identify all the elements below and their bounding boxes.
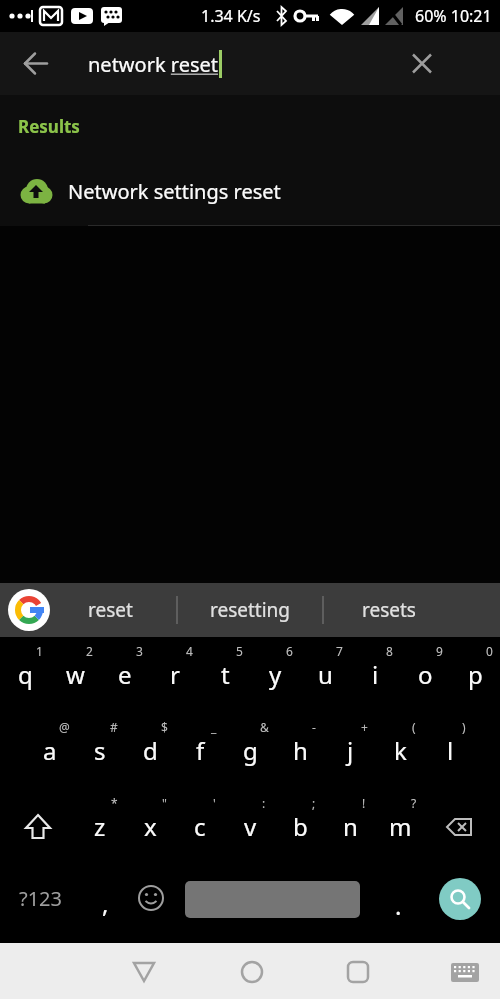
button[interactable]: l (425, 713, 475, 789)
button[interactable] (0, 789, 75, 865)
staticText: a (43, 734, 57, 767)
staticText: f (196, 734, 205, 767)
button[interactable] (224, 943, 280, 999)
button[interactable]: c (175, 789, 225, 865)
button[interactable]: y (250, 637, 300, 713)
button[interactable]: f (175, 713, 225, 789)
staticText: + (361, 719, 368, 735)
staticText: 0 (486, 643, 493, 659)
button[interactable]: w (50, 637, 100, 713)
button[interactable]: Network settings reset (0, 163, 500, 219)
button[interactable]: m (375, 789, 425, 865)
button[interactable]: g (225, 713, 275, 789)
button[interactable]: a (25, 713, 75, 789)
button[interactable]: p (450, 637, 500, 713)
button[interactable]: v (225, 789, 275, 865)
staticText: , (102, 887, 109, 920)
button[interactable]: k (375, 713, 425, 789)
staticText: Network settings reset (68, 178, 281, 205)
staticText: & (260, 719, 269, 735)
staticText: @ (59, 719, 70, 735)
button[interactable] (425, 789, 500, 865)
button[interactable] (330, 943, 386, 999)
staticText: Results (18, 115, 80, 138)
button[interactable]: . (378, 865, 418, 941)
staticText: l (447, 734, 454, 767)
staticText: v (244, 810, 257, 843)
staticText: ?123 (19, 885, 62, 912)
button[interactable]: h (275, 713, 325, 789)
button[interactable]: d (125, 713, 175, 789)
button[interactable]: resetting (178, 583, 322, 637)
staticText: t (221, 658, 230, 691)
staticText: $ (161, 719, 168, 735)
staticText: c (194, 810, 206, 843)
button[interactable]: e (100, 637, 150, 713)
staticText: ? (411, 795, 417, 811)
staticText: # (110, 719, 118, 735)
staticText: 1 (36, 643, 43, 659)
staticText: * (111, 795, 118, 811)
staticText: . (395, 889, 402, 922)
button[interactable]: o (400, 637, 450, 713)
staticText: 60% 10:21 (415, 5, 492, 27)
staticText: : (262, 795, 266, 811)
staticText: _ (211, 719, 217, 735)
staticText: b (293, 810, 308, 843)
button[interactable] (0, 583, 58, 637)
button[interactable]: reset (50, 583, 170, 637)
staticText: resets (362, 597, 416, 623)
button[interactable] (128, 865, 173, 941)
button[interactable]: r (150, 637, 200, 713)
staticText: 8 (386, 643, 393, 659)
staticText: 7 (336, 643, 343, 659)
staticText: 1.34 K/s (201, 5, 261, 27)
staticText: i (372, 658, 379, 691)
button[interactable]: z (75, 789, 125, 865)
button[interactable]: q (0, 637, 50, 713)
staticText: y (269, 658, 282, 691)
staticText: g (243, 734, 258, 767)
button[interactable]: resets (324, 583, 454, 637)
staticText: network reset (88, 51, 219, 78)
button[interactable] (185, 881, 360, 918)
staticText: d (143, 734, 158, 767)
staticText: o (418, 658, 433, 691)
staticText: - (312, 719, 316, 735)
staticText: p (468, 658, 483, 691)
staticText: ! (362, 795, 366, 811)
button[interactable]: i (350, 637, 400, 713)
button[interactable]: s (75, 713, 125, 789)
staticText: 3 (136, 643, 143, 659)
staticText: s (94, 734, 106, 767)
staticText: r (170, 658, 180, 691)
staticText: ) (462, 719, 466, 735)
button[interactable] (439, 878, 481, 920)
button[interactable] (116, 943, 172, 999)
button[interactable] (437, 943, 493, 999)
button[interactable]: , (85, 865, 125, 941)
button[interactable]: x (125, 789, 175, 865)
staticText: u (318, 658, 333, 691)
staticText: ; (312, 795, 316, 811)
staticText: 2 (86, 643, 93, 659)
staticText: resetting (210, 597, 291, 623)
staticText: x (144, 810, 157, 843)
button[interactable] (0, 32, 56, 95)
button[interactable] (394, 32, 450, 95)
staticText: w (66, 658, 85, 691)
staticText: n (343, 810, 358, 843)
button[interactable]: ?123 (5, 860, 75, 936)
staticText: 5 (236, 643, 243, 659)
button[interactable]: t (200, 637, 250, 713)
staticText: h (293, 734, 308, 767)
button[interactable]: n (325, 789, 375, 865)
staticText: reset (88, 597, 133, 623)
button[interactable]: u (300, 637, 350, 713)
staticText: ( (412, 719, 416, 735)
button[interactable]: b (275, 789, 325, 865)
staticText: " (162, 795, 167, 811)
button[interactable]: j (325, 713, 375, 789)
staticText: k (394, 734, 407, 767)
staticText: q (18, 658, 33, 691)
